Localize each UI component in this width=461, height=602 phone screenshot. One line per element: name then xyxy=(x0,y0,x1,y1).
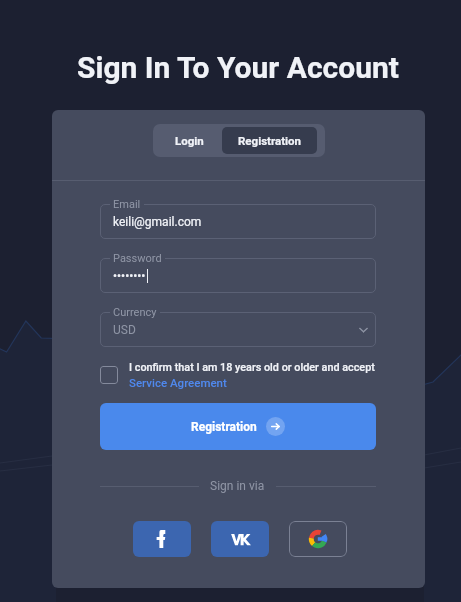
staticText: Sign in via xyxy=(210,479,265,493)
staticText: keili@gmail.com xyxy=(113,215,202,229)
button[interactable]: Registration xyxy=(100,403,376,450)
staticText: Email xyxy=(113,198,141,211)
staticText: Password xyxy=(113,252,162,265)
staticText: Service Agreement xyxy=(129,376,227,389)
button[interactable]: Login xyxy=(157,127,222,154)
staticText: I confirm that I am 18 years old or olde… xyxy=(129,361,375,374)
staticText: USD xyxy=(113,323,136,337)
staticText: Login xyxy=(175,134,204,147)
button[interactable] xyxy=(100,204,376,239)
button[interactable]: VK xyxy=(211,521,269,557)
button[interactable]: Registration xyxy=(222,127,317,154)
button[interactable]: Confirm age checkbox xyxy=(100,366,118,384)
staticText: Currency xyxy=(113,306,157,319)
staticText: Sign In To Your Account xyxy=(77,50,399,85)
button[interactable]: Google xyxy=(289,521,347,557)
staticText: Registration xyxy=(191,420,257,434)
staticText: Registration xyxy=(238,134,302,147)
button[interactable] xyxy=(100,258,376,293)
button[interactable] xyxy=(100,312,376,347)
button[interactable]: Service Agreement xyxy=(129,376,227,389)
staticText: •••••••• xyxy=(113,269,146,283)
button[interactable]: Facebook xyxy=(133,521,191,557)
